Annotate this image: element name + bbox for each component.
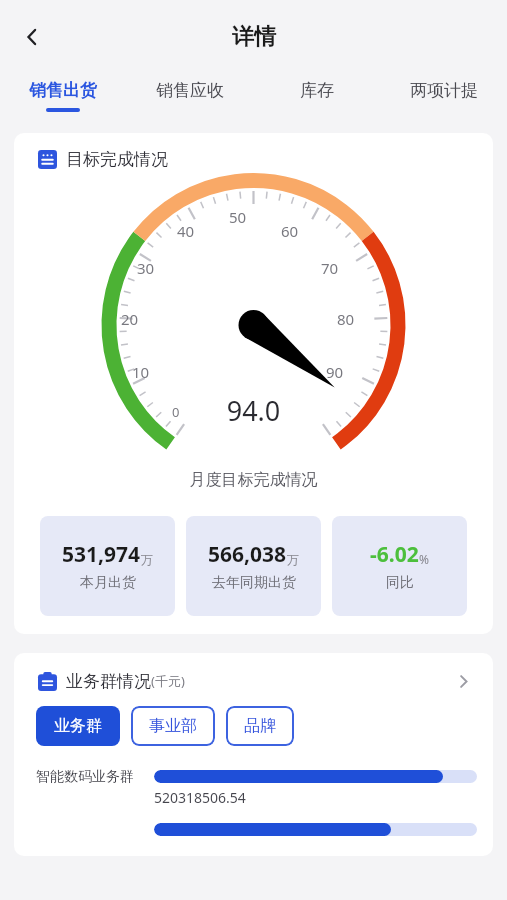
staticText: 520318506.54 [154, 788, 246, 807]
staticText: % [419, 551, 429, 567]
staticText: 业务群情况 [66, 671, 151, 692]
staticText: 同比 [386, 574, 414, 592]
staticText: 50 [229, 207, 247, 227]
staticText: 60 [281, 221, 299, 241]
staticText: 业务群 [54, 716, 102, 736]
staticText: 10 [132, 362, 150, 382]
staticText: 销售应收 [156, 80, 224, 101]
staticText: 20 [121, 309, 139, 329]
staticText: 80 [337, 309, 355, 329]
staticText: (千元) [151, 672, 185, 690]
staticText: 万 [287, 552, 299, 567]
staticText: 万 [141, 552, 153, 567]
staticText: 事业部 [149, 716, 197, 736]
staticText: 销售出货 [29, 80, 97, 101]
button[interactable]: 库存 [253, 74, 380, 124]
button[interactable]: 531,974 [40, 516, 175, 616]
button[interactable]: -6.02 [332, 516, 467, 616]
staticText: 月度目标完成情况 [14, 470, 493, 490]
staticText: 566,038 [208, 540, 287, 569]
button[interactable]: Back [10, 15, 54, 59]
button[interactable]: 品牌 [226, 706, 294, 746]
staticText: 两项计提 [410, 80, 478, 101]
staticText: 94.0 [14, 392, 493, 429]
staticText: 40 [177, 221, 195, 241]
staticText: 70 [321, 258, 339, 278]
button[interactable]: 事业部 [131, 706, 215, 746]
staticText: 库存 [300, 80, 334, 101]
staticText: 0 [172, 403, 180, 421]
button[interactable]: 业务群 [36, 706, 120, 746]
button[interactable]: 两项计提 [380, 74, 507, 124]
staticText: 智能数码业务群 [36, 768, 144, 786]
staticText: 本月出货 [80, 574, 136, 592]
staticText: 品牌 [244, 716, 276, 736]
staticText: -6.02 [370, 540, 419, 569]
button[interactable]: 566,038 [186, 516, 321, 616]
button[interactable]: 销售应收 [126, 74, 253, 124]
staticText: 90 [326, 362, 344, 382]
button[interactable]: View more [449, 667, 477, 695]
staticText: 30 [137, 258, 155, 278]
staticText: 详情 [232, 23, 276, 51]
button[interactable]: 销售出货 [0, 74, 126, 124]
staticText: 531,974 [62, 540, 141, 569]
staticText: 去年同期出货 [212, 574, 296, 592]
staticText: 目标完成情况 [66, 149, 168, 170]
